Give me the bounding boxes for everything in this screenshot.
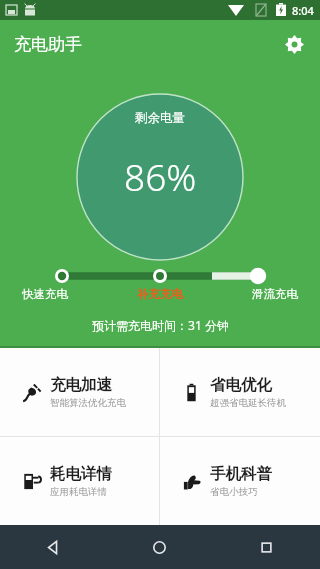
button[interactable]: 充电加速 [0, 348, 159, 436]
staticText: 86% [124, 151, 197, 201]
staticText: 预计需充电时间：31 分钟 [92, 317, 229, 333]
button[interactable]: 省电优化 [160, 348, 320, 436]
staticText: 剩余电量 [135, 110, 185, 126]
button[interactable]: Recent apps [213, 525, 320, 569]
staticText: 耗电详情 [50, 464, 112, 484]
button[interactable]: Back [0, 525, 106, 569]
button[interactable]: 耗电详情 [0, 437, 159, 525]
staticText: 充电加速 [50, 375, 112, 395]
staticText: 省电优化 [210, 375, 272, 395]
staticText: 应用耗电详情 [50, 486, 107, 498]
staticText: 智能算法优化充电 [50, 397, 126, 409]
button[interactable]: Home [106, 525, 213, 569]
staticText: 充电助手 [14, 34, 82, 55]
button[interactable]: 手机科普 [160, 437, 320, 525]
staticText: 快速充电 [22, 287, 68, 301]
staticText: 超强省电延长待机 [210, 397, 286, 409]
button[interactable]: Settings [276, 26, 312, 62]
staticText: 8:04 [292, 3, 314, 18]
staticText: 手机科普 [210, 464, 272, 484]
staticText: 滑流充电 [252, 287, 298, 301]
staticText: 补充充电 [137, 287, 183, 301]
staticText: 省电小技巧 [210, 486, 258, 498]
